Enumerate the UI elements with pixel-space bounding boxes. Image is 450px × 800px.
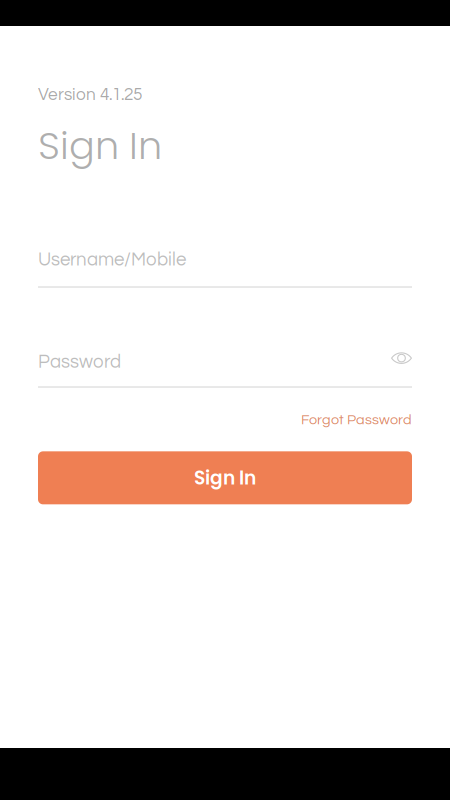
staticText: Password <box>38 352 121 372</box>
staticText: Sign In <box>38 119 162 172</box>
button[interactable]: Show password <box>391 351 412 372</box>
button[interactable]: Forgot Password <box>301 412 412 427</box>
staticText: Username/Mobile <box>38 250 186 269</box>
button[interactable]: Sign In <box>38 451 412 504</box>
staticText: Sign In <box>194 465 256 491</box>
staticText: Version 4.1.25 <box>38 86 142 104</box>
staticText: Forgot Password <box>301 412 412 427</box>
